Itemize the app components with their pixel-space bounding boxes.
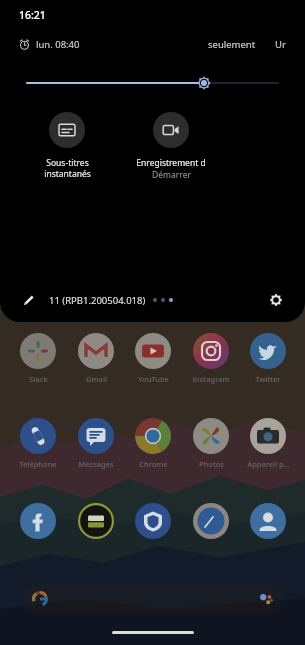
staticText: Chrome [139,459,168,469]
staticText: Photos [199,459,224,469]
button[interactable] [242,503,294,539]
staticText: Ur [275,38,286,51]
button[interactable] [12,503,64,539]
button[interactable] [127,503,179,539]
staticText: Messages [78,459,114,469]
button[interactable]: Gmail [70,333,122,384]
button[interactable]: Instagram [185,333,237,384]
button[interactable]: Photos [185,418,237,469]
button[interactable]: Messages [70,418,122,469]
button[interactable]: Twitter [242,333,294,384]
button[interactable] [23,584,282,614]
button[interactable]: Sous-titres instantanés [22,110,112,181]
staticText: YouTube [138,374,169,384]
staticText: Démarrer [152,169,191,181]
staticText: seulement [208,38,256,51]
button[interactable]: Slack [12,333,64,384]
button[interactable] [27,72,278,94]
staticText: Slack [29,374,48,384]
button[interactable] [185,503,237,539]
button[interactable]: Paramètres [265,289,287,311]
button[interactable] [70,503,122,539]
staticText: Sous-titres instantanés [44,157,91,179]
button[interactable]: Appareil p… [242,418,294,469]
button[interactable]: YouTube [127,333,179,384]
button[interactable]: Chrome [127,418,179,469]
staticText: lun. 08:40 [36,38,80,51]
staticText: Twitter [255,374,281,384]
staticText: Téléphone [19,459,57,469]
button[interactable]: Modifier [18,290,38,310]
button[interactable]: Enregistrement d [116,110,226,183]
button[interactable]: Téléphone [12,418,64,469]
staticText: Enregistrement d [136,157,206,169]
staticText: 11 (RPB1.200504.018) [49,294,146,307]
staticText: Instagram [192,374,230,384]
staticText: Gmail [86,374,107,384]
staticText: 16:21 [19,8,46,22]
staticText: Appareil p… [247,459,290,469]
